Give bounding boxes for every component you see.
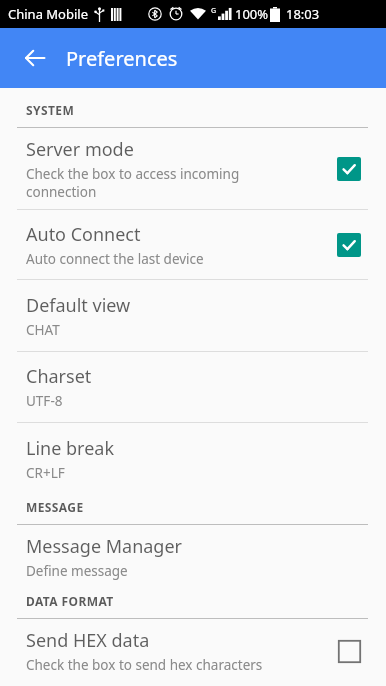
button[interactable]: Checked (332, 228, 366, 262)
button[interactable]: Charset (0, 352, 386, 422)
staticText: DATA FORMAT (26, 593, 114, 609)
button[interactable]: Auto Connect (0, 210, 386, 279)
button[interactable]: Back (12, 35, 58, 81)
button[interactable]: Server mode (0, 128, 386, 209)
button[interactable]: Default view (0, 280, 386, 351)
button[interactable]: Message Manager (0, 525, 386, 589)
staticText: Send HEX data (26, 628, 150, 653)
button[interactable]: Line break (0, 423, 386, 495)
staticText: Auto connect the last device (26, 250, 204, 268)
staticText: China Mobile (8, 5, 89, 23)
staticText: Auto Connect (26, 222, 141, 247)
staticText: CHAT (26, 321, 60, 339)
staticText: Line break (26, 436, 115, 461)
staticText: Default view (26, 293, 131, 318)
button[interactable]: Unchecked (332, 634, 366, 668)
staticText: SYSTEM (26, 102, 75, 118)
button[interactable]: Checked (332, 152, 366, 186)
staticText: MESSAGE (26, 499, 84, 515)
button[interactable]: Send HEX data (0, 619, 386, 683)
staticText: Check the box to send hex characters (26, 656, 263, 674)
staticText: Charset (26, 364, 92, 389)
staticText: Message Manager (26, 534, 183, 559)
staticText: 100% (235, 5, 269, 23)
staticText: Server mode (26, 137, 134, 162)
staticText: Check the box to access incoming connect… (26, 165, 240, 201)
staticText: Define message (26, 562, 128, 580)
staticText: UTF-8 (26, 392, 63, 410)
staticText: CR+LF (26, 464, 65, 482)
staticText: 18:03 (286, 5, 320, 23)
staticText: Preferences (66, 45, 178, 72)
staticText: G (211, 6, 217, 16)
